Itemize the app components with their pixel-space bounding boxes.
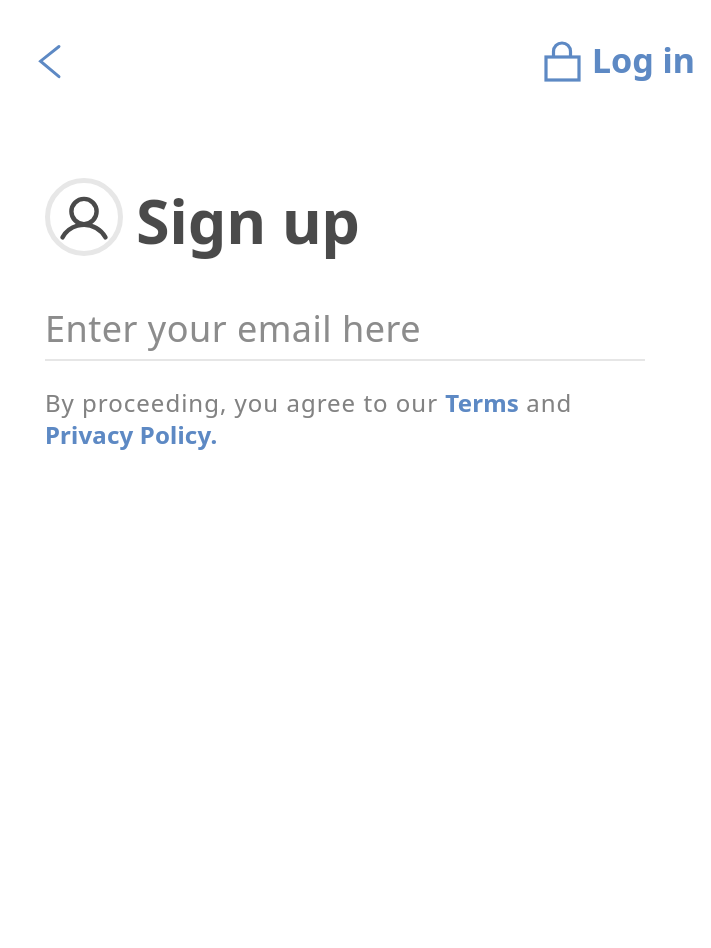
other: Account: [45, 178, 123, 256]
staticText: Log in: [592, 37, 695, 83]
button[interactable]: By proceeding, you agree to our Terms an…: [45, 386, 645, 451]
button[interactable]: Email input: [45, 304, 645, 361]
button[interactable]: Back: [12, 33, 68, 89]
button[interactable]: Log in: [536, 33, 701, 85]
staticText: By proceeding, you agree to our Terms an…: [45, 386, 645, 451]
staticText: Sign up: [136, 179, 361, 262]
staticText: Enter your email here: [45, 304, 422, 353]
